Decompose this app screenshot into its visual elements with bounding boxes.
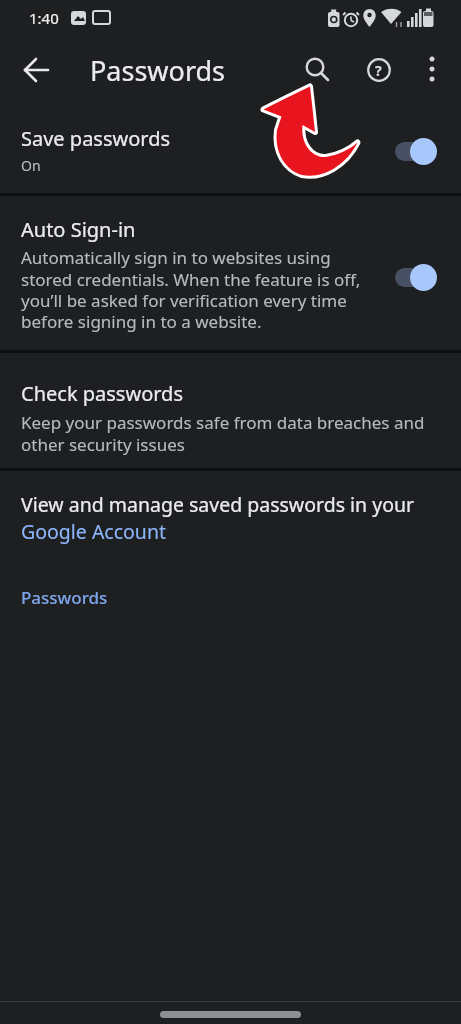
button[interactable]: ? bbox=[357, 48, 401, 92]
button[interactable] bbox=[412, 48, 452, 88]
button[interactable] bbox=[295, 48, 339, 92]
staticText: Automatically sign in to websites using … bbox=[21, 246, 361, 333]
staticText: View and manage saved passwords in your bbox=[21, 491, 415, 518]
button[interactable] bbox=[12, 45, 62, 95]
button[interactable]: Auto Sign-in bbox=[0, 196, 461, 350]
button[interactable]: View and manage saved passwords in your bbox=[0, 471, 461, 561]
staticText: 1:40 bbox=[29, 8, 59, 28]
staticText: Check passwords bbox=[21, 380, 183, 407]
button[interactable]: Passwords bbox=[0, 574, 461, 616]
staticText: Auto Sign-in bbox=[21, 216, 136, 243]
staticText: Save passwords bbox=[21, 125, 171, 152]
button[interactable]: Check passwords bbox=[0, 353, 461, 468]
staticText: Passwords bbox=[21, 586, 108, 609]
staticText: Google Account bbox=[21, 518, 167, 545]
staticText: On bbox=[21, 156, 41, 175]
button[interactable] bbox=[395, 137, 437, 165]
button[interactable] bbox=[395, 263, 437, 291]
button[interactable]: Save passwords bbox=[0, 102, 461, 194]
staticText: Passwords bbox=[90, 52, 226, 89]
staticText: ? bbox=[375, 61, 382, 80]
staticText: Keep your passwords safe from data breac… bbox=[21, 411, 425, 456]
